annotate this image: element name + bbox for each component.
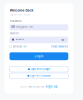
staticText: Login — [34, 55, 43, 58]
staticText: Sign Up — [46, 85, 58, 88]
button[interactable]: Forgot Password? — [51, 45, 68, 48]
staticText: Don't have an account? — [20, 85, 45, 88]
button[interactable]: Login with Google — [9, 66, 68, 72]
button[interactable]: Login — [9, 52, 68, 60]
staticText: Login with Google — [31, 68, 50, 70]
staticText: user@gmail.com — [16, 25, 33, 28]
staticText: Forgot Password? — [51, 45, 68, 48]
staticText: Login into your account — [9, 13, 30, 16]
staticText: Welcome Back — [9, 8, 33, 12]
button[interactable]: Login with Facebook — [9, 73, 68, 79]
staticText: Email address — [9, 20, 21, 22]
staticText: Login with Facebook — [30, 74, 50, 77]
button[interactable]: Show password — [60, 37, 66, 43]
button[interactable]: Don't have an account? — [9, 85, 68, 88]
button[interactable]: Remember me — [9, 45, 26, 48]
staticText: Password — [9, 32, 18, 35]
staticText: Remember me — [12, 45, 26, 48]
